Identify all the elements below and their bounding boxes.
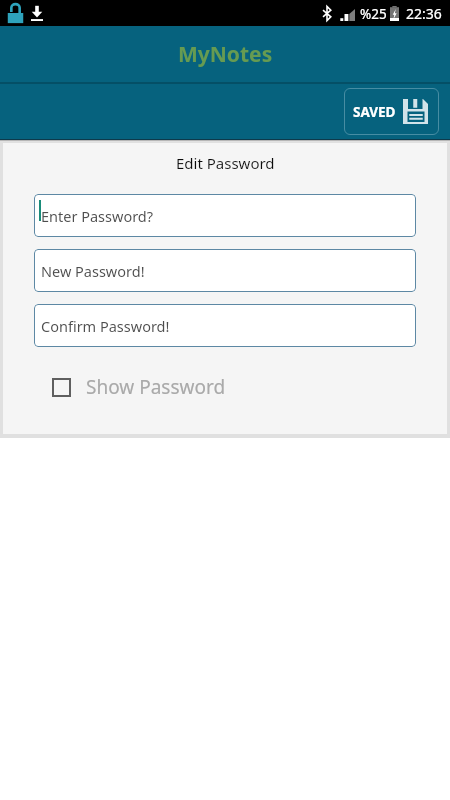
- staticText: New Password!: [41, 261, 145, 281]
- staticText: Enter Password?: [41, 206, 154, 226]
- staticText: SAVED: [353, 103, 396, 121]
- staticText: MyNotes: [178, 40, 273, 69]
- button[interactable]: Confirm Password!: [34, 304, 416, 347]
- staticText: 22:36: [406, 4, 442, 23]
- staticText: %25: [360, 5, 387, 23]
- other: Secure: [7, 2, 24, 24]
- button[interactable]: SAVED: [344, 88, 439, 135]
- staticText: Edit Password: [176, 153, 275, 173]
- button[interactable]: New Password!: [34, 249, 416, 292]
- button[interactable]: Enter Password?: [34, 194, 416, 237]
- other: Save note: [403, 99, 428, 124]
- staticText: Confirm Password!: [41, 316, 170, 336]
- button[interactable]: Show Password: [46, 367, 226, 407]
- staticText: Show Password: [86, 374, 226, 400]
